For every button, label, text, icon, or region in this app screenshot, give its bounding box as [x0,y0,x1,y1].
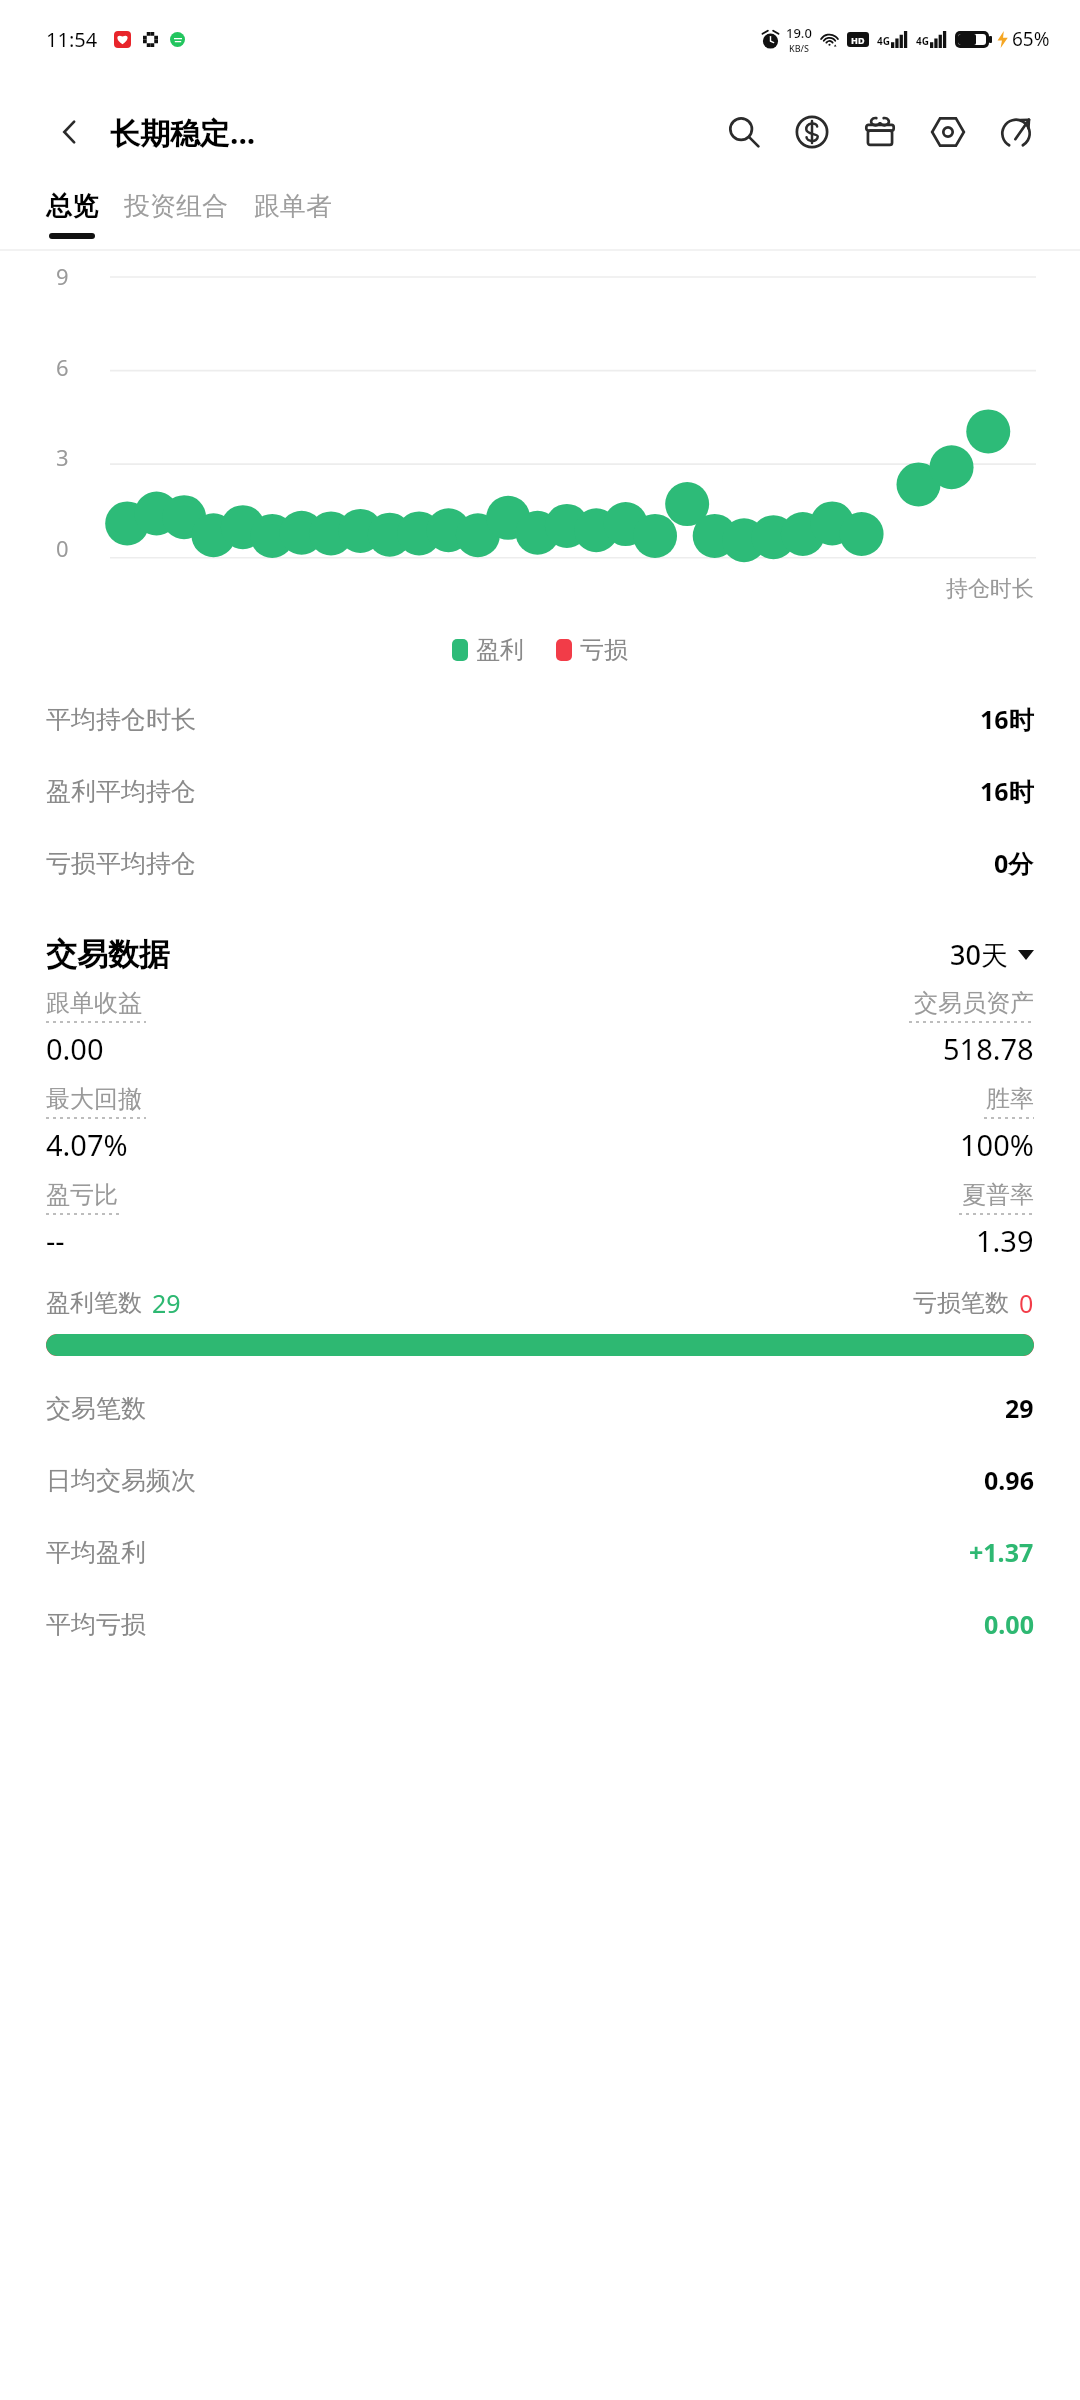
staticText: 29 [1005,1391,1034,1425]
staticText: 持仓时长 [946,575,1034,603]
staticText: 盈利平均持仓 [46,776,196,807]
staticText: 16时 [980,774,1034,808]
staticText: 3 [56,442,69,472]
button[interactable]: 盈亏比 [46,1180,540,1260]
button[interactable]: Currency [784,104,840,160]
staticText: 投资组合 [124,190,228,223]
staticText: 65% [1012,26,1050,52]
staticText: 夏普率 [962,1180,1034,1210]
staticText: 最大回撤 [46,1084,142,1114]
staticText: 0 [56,533,69,563]
staticText: 518.78 [943,1029,1034,1068]
staticText: 0.00 [984,1607,1034,1641]
staticText: 总览 [46,190,98,223]
button[interactable]: Search [716,104,772,160]
button[interactable]: 亏损平均持仓 [0,827,1080,899]
staticText: HD [851,34,865,46]
button[interactable]: 总览 [46,186,98,243]
button[interactable]: 平均持仓时长 [0,683,1080,755]
staticText: 平均盈利 [46,1537,146,1568]
button[interactable]: 夏普率 [540,1180,1034,1260]
staticText: 16时 [980,702,1034,736]
staticText: 0.96 [984,1463,1034,1497]
button[interactable]: 跟单收益 [46,988,540,1068]
staticText: 盈亏比 [46,1180,118,1210]
staticText: 跟单收益 [46,988,142,1018]
button[interactable]: Back [46,108,94,156]
staticText: 交易笔数 [46,1393,146,1424]
staticText: 4G [916,34,929,48]
staticText: 盈利笔数 [46,1288,142,1318]
button[interactable]: 盈利平均持仓 [0,755,1080,827]
staticText: 0.00 [46,1029,104,1068]
staticText: 1.39 [976,1221,1034,1260]
staticText: 平均亏损 [46,1609,146,1640]
staticText: 亏损笔数 [913,1288,1009,1318]
button[interactable]: 日均交易频次 [0,1444,1080,1516]
staticText: 6 [56,352,69,382]
button[interactable]: Settings [920,104,976,160]
staticText: 30天 [950,936,1008,973]
staticText: 日均交易频次 [46,1465,196,1496]
staticText: 29 [152,1286,181,1320]
staticText: 盈利 [476,635,524,665]
button[interactable]: 投资组合 [124,186,228,243]
button[interactable]: 30天 [950,936,1034,973]
staticText: 19.0 [786,24,812,42]
staticText: -- [46,1221,65,1260]
button[interactable]: 平均亏损 [0,1588,1080,1660]
button[interactable]: 最大回撤 [46,1084,540,1164]
button[interactable]: Gift [852,104,908,160]
staticText: 11:54 [46,26,98,53]
staticText: 4G [877,34,890,48]
staticText: 100% [960,1125,1034,1164]
staticText: 0分 [994,846,1034,880]
staticText: 交易员资产 [914,988,1034,1018]
staticText: 交易数据 [46,935,170,974]
button[interactable]: 平均盈利 [0,1516,1080,1588]
button[interactable]: 跟单者 [254,186,332,243]
staticText: KB/S [789,42,809,54]
staticText: 4.07% [46,1125,128,1164]
staticText: 0 [1019,1286,1034,1320]
staticText: 9 [56,261,69,291]
staticText: 长期稳定... [110,112,256,153]
button[interactable]: 交易笔数 [0,1372,1080,1444]
staticText: 亏损平均持仓 [46,848,196,879]
button[interactable]: Share [988,104,1044,160]
staticText: 跟单者 [254,190,332,223]
button[interactable]: 交易员资产 [540,988,1034,1068]
staticText: 胜率 [986,1084,1034,1114]
staticText: 平均持仓时长 [46,704,196,735]
staticText: +1.37 [969,1535,1034,1569]
button[interactable]: 胜率 [540,1084,1034,1164]
staticText: 亏损 [580,635,628,665]
